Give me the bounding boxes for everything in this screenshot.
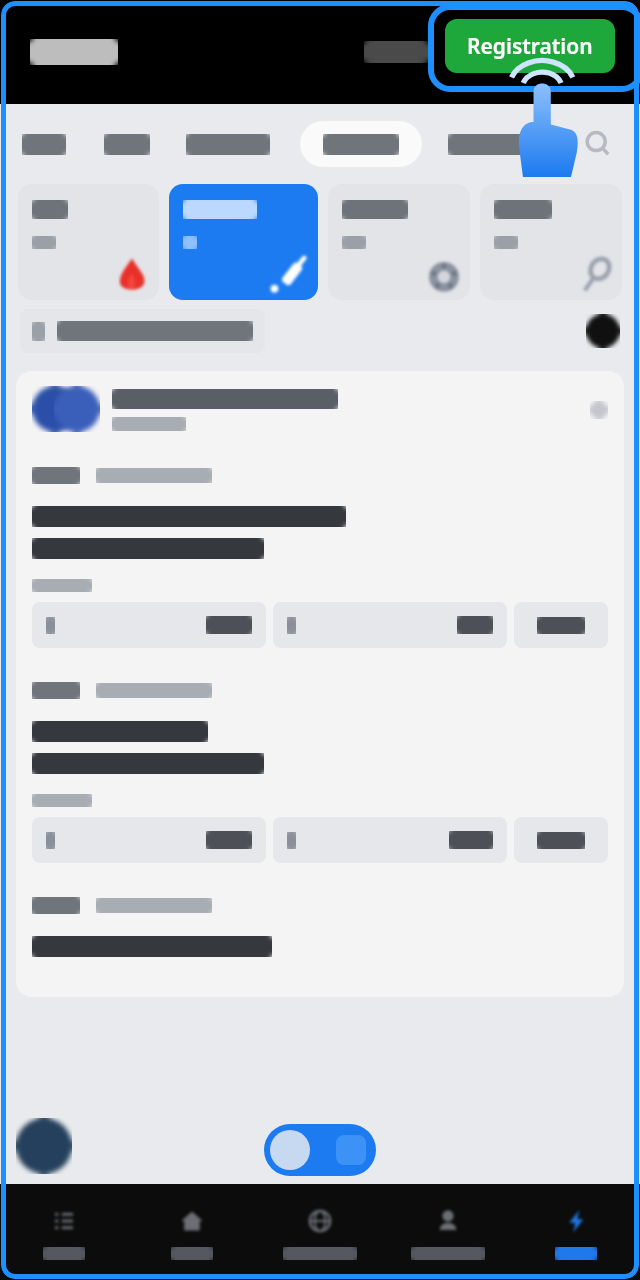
button[interactable]: Home (128, 1184, 256, 1280)
button[interactable]: Search (578, 124, 618, 164)
button[interactable]: My Account (384, 1184, 512, 1280)
button[interactable] (32, 602, 266, 648)
button[interactable] (32, 817, 266, 863)
button[interactable]: Menu (0, 1184, 128, 1280)
button[interactable] (169, 184, 318, 300)
button[interactable] (514, 817, 608, 863)
button[interactable] (104, 121, 150, 167)
button[interactable] (273, 602, 507, 648)
button[interactable]: Registration (445, 19, 615, 73)
button[interactable]: Options (586, 314, 620, 348)
button[interactable]: View mode toggle (264, 1124, 376, 1176)
staticText: Registration (467, 32, 593, 61)
button[interactable] (273, 817, 507, 863)
button[interactable] (186, 121, 270, 167)
button[interactable] (18, 184, 159, 300)
button[interactable]: Bets (512, 1184, 640, 1280)
button[interactable]: Country (256, 1184, 384, 1280)
button[interactable]: Profile (16, 1118, 72, 1174)
button[interactable] (328, 184, 470, 300)
button[interactable] (448, 121, 530, 167)
button[interactable] (514, 602, 608, 648)
button[interactable] (300, 121, 422, 167)
button[interactable] (480, 184, 622, 300)
button[interactable] (16, 449, 624, 664)
button[interactable] (16, 664, 624, 879)
button[interactable] (16, 879, 624, 997)
button[interactable]: More (16, 371, 624, 449)
button[interactable] (22, 121, 66, 167)
button[interactable]: Login (364, 41, 428, 63)
button[interactable] (20, 309, 265, 353)
other: More (590, 401, 608, 419)
